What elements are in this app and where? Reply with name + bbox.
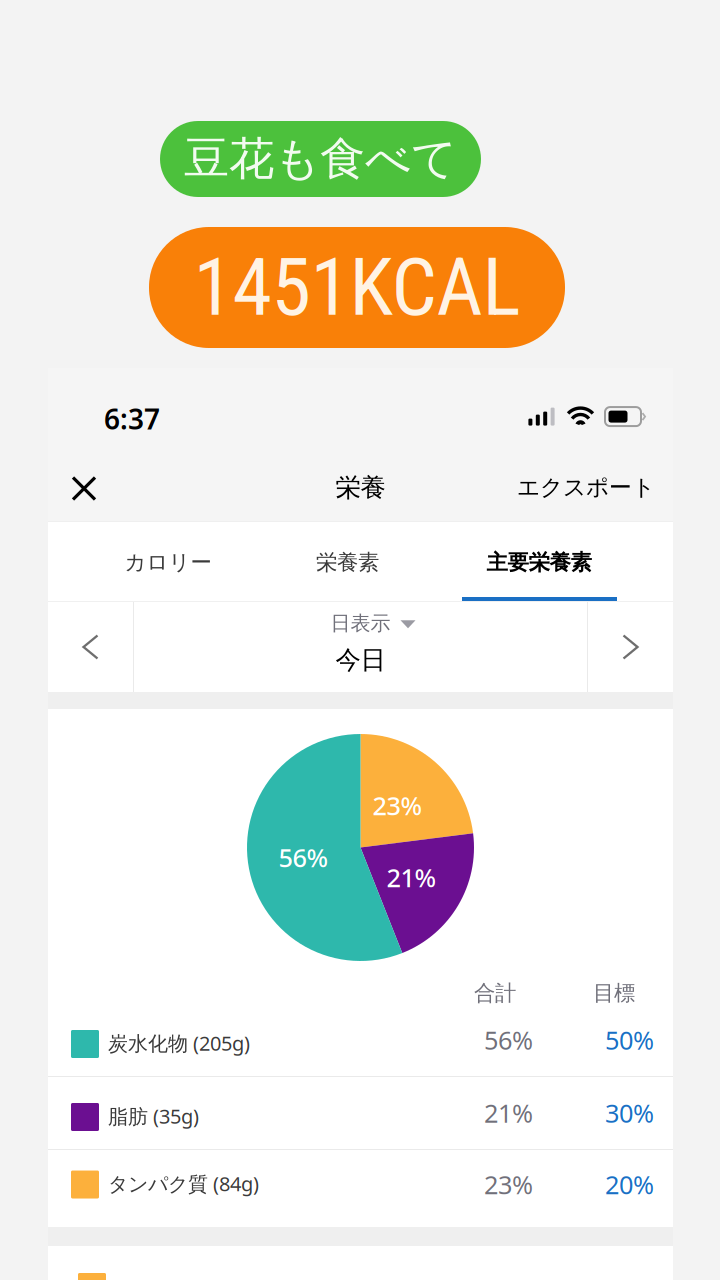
staticText: 目標 — [593, 980, 635, 1006]
staticText: 豆花も食べて — [184, 131, 457, 187]
button[interactable]: 主要栄養素 — [434, 522, 644, 597]
button[interactable]: 炭水化物 (205g) — [48, 1004, 673, 1076]
staticText: 脂肪 (35g) — [108, 1103, 199, 1129]
button[interactable]: 脂肪 (35g) — [48, 1077, 673, 1149]
staticText: 23% — [484, 1168, 533, 1201]
staticText: 30% — [605, 1096, 654, 1130]
staticText: 1451KCAL — [193, 241, 520, 334]
staticText: 栄養 — [335, 472, 385, 503]
staticText: 56% — [278, 841, 328, 874]
button[interactable]: 閉じる — [61, 451, 119, 513]
staticText: 50% — [605, 1023, 654, 1057]
button[interactable]: 次の日 — [588, 602, 673, 692]
button[interactable]: カロリー — [75, 522, 261, 597]
staticText: 23% — [372, 789, 422, 822]
staticText: タンパク質 (84g) — [108, 1170, 259, 1197]
staticText: 栄養素 — [316, 549, 379, 576]
staticText: 56% — [484, 1023, 533, 1057]
staticText: 21% — [386, 861, 436, 894]
staticText: 合計 — [474, 980, 516, 1006]
button[interactable]: 日表示 — [134, 602, 587, 692]
staticText: 日表示 — [330, 611, 390, 636]
button[interactable]: 前の日 — [48, 602, 133, 692]
staticText: 21% — [484, 1096, 533, 1130]
button[interactable]: タンパク質 (84g) — [48, 1150, 673, 1227]
button[interactable]: 栄養素 — [261, 522, 434, 597]
button[interactable]: エクスポート — [517, 451, 655, 513]
staticText: カロリー — [124, 549, 211, 576]
staticText: 主要栄養素 — [486, 549, 591, 576]
staticText: エクスポート — [517, 474, 655, 501]
staticText: 6:37 — [104, 400, 160, 437]
staticText: 20% — [605, 1168, 654, 1201]
staticText: 今日 — [335, 645, 385, 676]
staticText: 炭水化物 (205g) — [108, 1030, 250, 1056]
